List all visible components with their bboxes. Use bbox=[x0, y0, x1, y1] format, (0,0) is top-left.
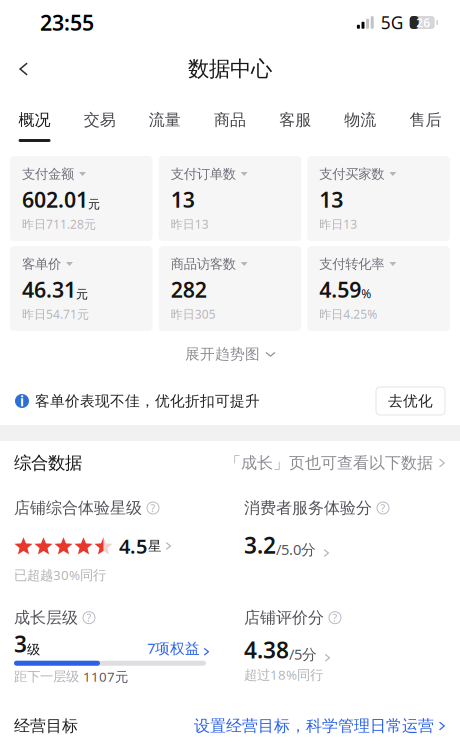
staticText: 支付金额 bbox=[22, 166, 74, 182]
staticText: % bbox=[361, 286, 371, 302]
button[interactable]: 展开趋势图 bbox=[0, 331, 460, 377]
staticText: 超过18%同行 bbox=[244, 666, 323, 683]
staticText: 数据中心 bbox=[188, 56, 272, 82]
staticText: 13 bbox=[171, 185, 195, 214]
staticText: 店铺综合体验星级 bbox=[14, 498, 142, 518]
staticText: 支付订单数 bbox=[171, 166, 236, 182]
staticText: ? bbox=[332, 611, 337, 625]
button[interactable]: 支付转化率 bbox=[307, 246, 450, 331]
button[interactable]: 消费者服务体验分 bbox=[244, 499, 446, 585]
button[interactable]: 售后 bbox=[393, 93, 458, 143]
staticText: 3.2 bbox=[244, 530, 276, 560]
staticText: 星 bbox=[148, 538, 161, 554]
staticText: ? bbox=[150, 501, 155, 515]
staticText: 经营目标 bbox=[14, 716, 78, 736]
staticText: 23:55 bbox=[40, 8, 94, 37]
staticText: /5分 bbox=[289, 644, 317, 664]
staticText: 昨日13 bbox=[171, 216, 209, 232]
staticText: 1107元 bbox=[83, 668, 128, 685]
staticText: 元 bbox=[88, 197, 100, 212]
button[interactable]: 返回 bbox=[0, 47, 48, 91]
button[interactable]: 商品 bbox=[197, 93, 262, 143]
staticText: 13 bbox=[319, 185, 343, 214]
staticText: 支付买家数 bbox=[319, 166, 384, 182]
staticText: 282 bbox=[171, 275, 207, 304]
button[interactable]: 设置经营目标，科学管理日常运营 bbox=[194, 716, 446, 736]
staticText: 售后 bbox=[409, 110, 441, 130]
staticText: 46.31 bbox=[22, 275, 76, 304]
staticText: 昨日13 bbox=[319, 216, 357, 232]
staticText: 4.5 bbox=[119, 533, 147, 559]
staticText: 602.01 bbox=[22, 185, 88, 214]
staticText: 「成长」页也可查看以下数据 bbox=[225, 453, 433, 473]
staticText: 元 bbox=[76, 287, 88, 302]
staticText: 交易 bbox=[84, 110, 116, 130]
button[interactable]: 支付买家数 bbox=[307, 156, 450, 241]
staticText: 商品 bbox=[214, 110, 246, 130]
staticText: 已超越30%同行 bbox=[14, 566, 106, 584]
staticText: ? bbox=[86, 611, 91, 625]
button[interactable]: 支付订单数 bbox=[159, 156, 301, 241]
staticText: 昨日711.28元 bbox=[22, 216, 96, 232]
button[interactable]: 客服 bbox=[263, 93, 328, 143]
staticText: 距下一层级 bbox=[14, 668, 79, 685]
button[interactable]: 成长层级 bbox=[14, 609, 210, 685]
staticText: 客单价 bbox=[22, 256, 61, 272]
staticText: ? bbox=[380, 501, 385, 515]
button[interactable]: 去优化 bbox=[376, 387, 445, 415]
button[interactable]: 支付金额 bbox=[10, 156, 153, 241]
staticText: 3 bbox=[14, 629, 27, 659]
staticText: 客服 bbox=[279, 110, 311, 130]
staticText: 设置经营目标，科学管理日常运营 bbox=[194, 716, 434, 736]
staticText: 物流 bbox=[344, 110, 376, 130]
staticText: 5G bbox=[381, 11, 404, 34]
button[interactable]: 流量 bbox=[132, 93, 197, 143]
staticText: i bbox=[20, 392, 24, 410]
button[interactable]: 店铺综合体验星级 bbox=[14, 499, 210, 584]
button[interactable]: 客单价 bbox=[10, 246, 153, 331]
staticText: /5.0分 bbox=[276, 540, 316, 559]
staticText: 支付转化率 bbox=[319, 256, 384, 272]
staticText: 概况 bbox=[19, 110, 51, 130]
button[interactable]: 店铺评价分 bbox=[244, 609, 446, 683]
staticText: 7项权益 bbox=[147, 638, 200, 658]
staticText: 综合数据 bbox=[14, 452, 82, 474]
staticText: 流量 bbox=[149, 110, 181, 130]
staticText: 4.38 bbox=[244, 635, 289, 665]
staticText: 昨日305 bbox=[171, 306, 216, 322]
button[interactable]: 「成长」页也可查看以下数据 bbox=[225, 453, 446, 473]
button[interactable]: 交易 bbox=[67, 93, 132, 143]
staticText: 昨日4.25% bbox=[319, 306, 377, 322]
staticText: 26 bbox=[416, 14, 430, 30]
staticText: 消费者服务体验分 bbox=[244, 498, 372, 518]
button[interactable]: 商品访客数 bbox=[159, 246, 301, 331]
staticText: 成长层级 bbox=[14, 608, 78, 628]
staticText: 4.59 bbox=[319, 275, 361, 304]
button[interactable]: 概况 bbox=[2, 93, 67, 143]
staticText: 客单价表现不佳，优化折扣可提升 bbox=[35, 392, 260, 410]
staticText: 商品访客数 bbox=[171, 256, 236, 272]
staticText: 去优化 bbox=[388, 392, 433, 410]
staticText: 店铺评价分 bbox=[244, 608, 324, 628]
button[interactable]: 物流 bbox=[328, 93, 393, 143]
staticText: 展开趋势图 bbox=[185, 345, 260, 363]
staticText: 昨日54.71元 bbox=[22, 306, 89, 322]
staticText: 级 bbox=[27, 641, 40, 658]
